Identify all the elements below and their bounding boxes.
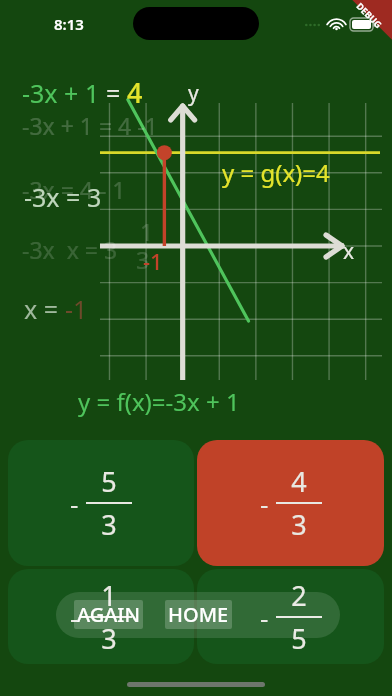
staticText: -3x x = 3 (22, 234, 118, 265)
staticText: 3 (101, 506, 117, 543)
staticText: x = (24, 292, 65, 326)
button[interactable]: - (197, 440, 384, 566)
staticText: 1 (140, 216, 154, 247)
staticText: y (188, 79, 199, 108)
staticText: -3x + 1 = 4 -1 (22, 110, 158, 141)
button[interactable]: AGAIN (74, 600, 143, 629)
staticText: 8:13 (54, 14, 84, 34)
staticText: y = f(x)=-3x + 1 (78, 385, 240, 418)
staticText: - (260, 600, 269, 635)
staticText: 3 (101, 620, 117, 657)
staticText: - (70, 600, 79, 635)
staticText: -3x = 4 - 1 (22, 174, 126, 205)
staticText: -3x + 1 (22, 76, 106, 110)
staticText: 3 (136, 244, 150, 275)
staticText: 2 (291, 577, 307, 614)
staticText: -3x = 3 (24, 180, 102, 214)
staticText: -1 (65, 292, 88, 326)
staticText: 4 (291, 463, 307, 500)
staticText: 3 (291, 506, 307, 543)
staticText: 5 (291, 620, 307, 657)
staticText: AGAIN (77, 601, 140, 628)
staticText: 4 (127, 74, 143, 111)
button[interactable]: - (8, 569, 194, 664)
staticText: DEBUG (354, 0, 385, 30)
staticText: y = g(x)=4 (222, 156, 330, 189)
staticText: 5 (101, 463, 117, 500)
staticText: x (343, 237, 355, 266)
staticText: HOME (168, 601, 229, 628)
staticText: - (70, 486, 79, 521)
button[interactable]: HOME (165, 600, 232, 629)
button[interactable]: - (197, 569, 384, 664)
staticText: = (106, 76, 127, 110)
staticText: -1 (143, 246, 163, 276)
button[interactable]: - (8, 440, 194, 566)
staticText: 1 (101, 577, 117, 614)
staticText: - (260, 486, 269, 521)
